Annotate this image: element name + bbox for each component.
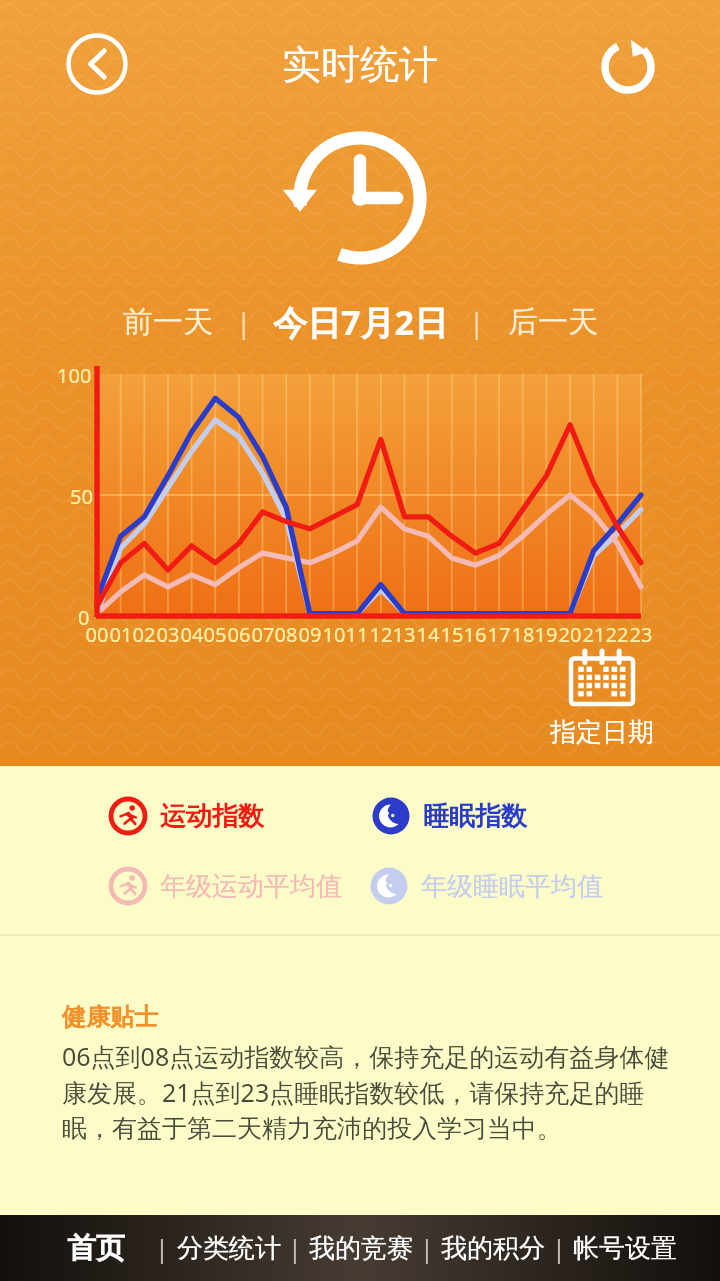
staticText: 年级睡眠平均值 <box>421 870 603 903</box>
staticText: 22 <box>602 621 632 648</box>
staticText: 100 <box>57 362 92 389</box>
button[interactable]: 首页 <box>36 1215 155 1281</box>
staticText: | <box>420 1231 434 1265</box>
button[interactable]: 我的积分 <box>434 1215 552 1281</box>
staticText: 06 <box>224 621 254 648</box>
staticText: 20 <box>555 621 585 648</box>
staticText: 16 <box>460 621 490 648</box>
staticText: 年级运动平均值 <box>160 870 342 903</box>
staticText: 12 <box>366 621 396 648</box>
staticText: 我的积分 <box>441 1232 545 1265</box>
staticText: 06点到08点运动指数较高，保持充足的运动有益身体健康发展。21点到23点睡眠指… <box>62 1039 674 1145</box>
button[interactable]: 帐号设置 <box>566 1215 684 1281</box>
staticText: 实时统计 <box>282 40 438 89</box>
button[interactable]: 运动指数 <box>106 794 267 838</box>
staticText: 17 <box>484 621 514 648</box>
staticText: 02 <box>129 621 159 648</box>
button[interactable]: 前一天 <box>117 298 219 346</box>
button[interactable]: 指定日期 <box>546 646 658 753</box>
staticText: 07 <box>248 621 278 648</box>
button[interactable]: 年级运动平均值 <box>106 864 345 908</box>
staticText: 21 <box>579 621 609 648</box>
staticText: 00 <box>82 621 112 648</box>
staticText: 09 <box>295 621 325 648</box>
button[interactable]: Back <box>66 33 128 95</box>
staticText: 15 <box>437 621 467 648</box>
staticText: 05 <box>200 621 230 648</box>
staticText: | <box>552 1231 566 1265</box>
staticText: 指定日期 <box>550 716 654 749</box>
staticText: 分类统计 <box>177 1232 281 1265</box>
staticText: 后一天 <box>508 303 598 341</box>
staticText: 01 <box>106 621 136 648</box>
staticText: 19 <box>531 621 561 648</box>
staticText: 帐号设置 <box>573 1232 677 1265</box>
button[interactable]: 年级睡眠平均值 <box>367 864 606 908</box>
button[interactable]: 我的竞赛 <box>302 1215 420 1281</box>
staticText: | <box>288 1231 302 1265</box>
staticText: 04 <box>177 621 207 648</box>
button[interactable]: 睡眠指数 <box>369 794 530 838</box>
staticText: 今日7月2日 <box>273 299 448 345</box>
staticText: | <box>469 303 485 341</box>
staticText: 前一天 <box>123 303 213 341</box>
button[interactable]: 今日7月2日 <box>269 294 452 350</box>
staticText: | <box>236 303 252 341</box>
staticText: | <box>155 1231 169 1265</box>
staticText: 首页 <box>67 1230 125 1267</box>
staticText: 18 <box>508 621 538 648</box>
staticText: 23 <box>626 621 656 648</box>
staticText: 08 <box>271 621 301 648</box>
button[interactable]: 分类统计 <box>169 1215 288 1281</box>
button[interactable]: Refresh <box>598 34 658 94</box>
staticText: 11 <box>342 621 372 648</box>
staticText: 03 <box>153 621 183 648</box>
staticText: 0 <box>78 604 90 631</box>
staticText: 13 <box>389 621 419 648</box>
staticText: 睡眠指数 <box>423 800 527 833</box>
staticText: 运动指数 <box>160 800 264 833</box>
staticText: 50 <box>70 483 93 510</box>
staticText: 我的竞赛 <box>309 1232 413 1265</box>
staticText: 10 <box>319 621 349 648</box>
staticText: 14 <box>413 621 443 648</box>
button[interactable]: 后一天 <box>502 298 604 346</box>
staticText: 健康贴士 <box>62 1002 158 1032</box>
